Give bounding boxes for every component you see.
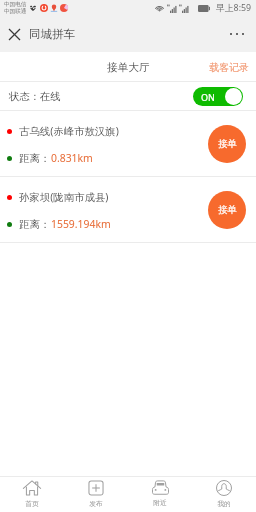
button[interactable]: More options <box>221 18 253 50</box>
staticText: 古乌线(赤峰市敖汉旗) <box>19 124 119 138</box>
staticText: 接单 <box>218 138 237 150</box>
staticText: 早上8:59 <box>216 2 252 14</box>
staticText: 接单 <box>218 204 237 216</box>
button[interactable]: ON <box>193 87 243 106</box>
button[interactable]: 接单 <box>208 125 246 163</box>
staticText: 中国电信 <box>4 1 27 8</box>
staticText: ON <box>201 91 215 103</box>
button[interactable]: Close <box>2 22 26 46</box>
staticText: 状态：在线 <box>9 90 61 103</box>
button[interactable]: 我的 <box>192 477 256 508</box>
button[interactable]: 发布 <box>64 477 128 508</box>
button[interactable]: 首页 <box>0 477 64 508</box>
staticText: 同城拼车 <box>29 27 76 42</box>
button[interactable]: 接单 <box>208 191 246 229</box>
staticText: 中国联通 <box>4 8 27 15</box>
button[interactable]: 载客记录 <box>209 61 256 74</box>
staticText: 孙家坝(陇南市成县) <box>19 190 109 204</box>
staticText: 发布 <box>89 499 103 508</box>
staticText: 接单大厅 <box>107 61 150 74</box>
button[interactable]: 古乌线(赤峰市敖汉旗) <box>0 111 256 177</box>
staticText: 我的 <box>217 499 231 508</box>
staticText: 0.831km <box>51 151 93 165</box>
button[interactable]: 孙家坝(陇南市成县) <box>0 177 256 243</box>
staticText: 1559.194km <box>51 217 111 231</box>
staticText: 附近 <box>153 498 167 507</box>
staticText: 距离： <box>19 152 51 165</box>
staticText: 首页 <box>25 499 39 508</box>
staticText: 距离： <box>19 218 51 231</box>
button[interactable]: 附近 <box>128 477 192 507</box>
